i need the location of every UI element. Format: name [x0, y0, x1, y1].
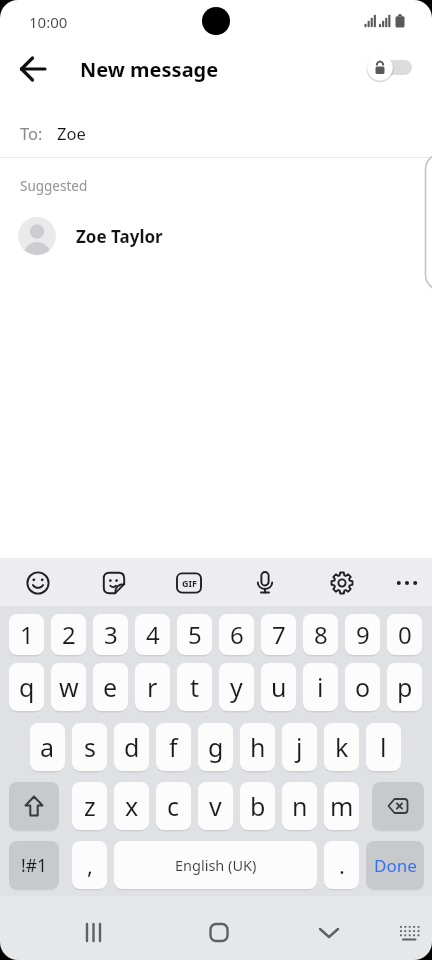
- button[interactable]: .: [324, 841, 359, 889]
- staticText: h: [250, 730, 266, 764]
- button[interactable]: [90, 558, 138, 606]
- button[interactable]: [71, 908, 119, 956]
- staticText: t: [190, 670, 200, 704]
- button[interactable]: 5: [177, 614, 212, 655]
- staticText: y: [230, 670, 243, 704]
- button[interactable]: 9: [345, 614, 380, 655]
- staticText: Zoe: [57, 122, 86, 144]
- staticText: b: [250, 789, 266, 823]
- staticText: 0: [398, 618, 412, 651]
- button[interactable]: [14, 558, 62, 606]
- button[interactable]: c: [156, 782, 191, 830]
- staticText: 8: [314, 618, 328, 651]
- button[interactable]: 1: [9, 614, 44, 655]
- button[interactable]: Zoe Taylor: [0, 210, 432, 262]
- button[interactable]: [383, 558, 431, 606]
- button[interactable]: 8: [303, 614, 338, 655]
- button[interactable]: u: [261, 663, 296, 711]
- staticText: e: [103, 670, 118, 704]
- staticText: i: [317, 670, 324, 704]
- staticText: f: [169, 730, 178, 764]
- button[interactable]: y: [219, 663, 254, 711]
- button[interactable]: 0: [387, 614, 422, 655]
- button[interactable]: k: [324, 723, 359, 771]
- button[interactable]: [195, 908, 243, 956]
- button[interactable]: [372, 782, 424, 830]
- button[interactable]: 3: [93, 614, 128, 655]
- button[interactable]: English (UK): [114, 841, 317, 889]
- button[interactable]: j: [282, 723, 317, 771]
- button[interactable]: [241, 558, 289, 606]
- button[interactable]: g: [198, 723, 233, 771]
- staticText: g: [208, 730, 224, 764]
- button[interactable]: n: [282, 782, 317, 830]
- staticText: 7: [272, 618, 286, 651]
- button[interactable]: 7: [261, 614, 296, 655]
- staticText: j: [296, 730, 303, 764]
- button[interactable]: o: [345, 663, 380, 711]
- staticText: ,: [87, 850, 93, 880]
- button[interactable]: w: [51, 663, 86, 711]
- button[interactable]: a: [30, 723, 65, 771]
- staticText: v: [209, 789, 222, 823]
- staticText: !#1: [21, 853, 48, 877]
- staticText: 9: [356, 618, 370, 651]
- button[interactable]: e: [93, 663, 128, 711]
- button[interactable]: GIF: [165, 558, 213, 606]
- staticText: 6: [230, 618, 244, 651]
- button[interactable]: !#1: [9, 841, 59, 889]
- staticText: l: [380, 730, 387, 764]
- button[interactable]: p: [387, 663, 422, 711]
- button[interactable]: t: [177, 663, 212, 711]
- button[interactable]: Done: [366, 841, 424, 889]
- button[interactable]: d: [114, 723, 149, 771]
- staticText: k: [335, 730, 349, 764]
- staticText: English (UK): [175, 855, 257, 875]
- staticText: w: [59, 670, 79, 704]
- button[interactable]: s: [72, 723, 107, 771]
- staticText: p: [397, 670, 413, 704]
- button[interactable]: [305, 908, 353, 956]
- button[interactable]: r: [135, 663, 170, 711]
- staticText: n: [292, 789, 308, 823]
- staticText: Done: [374, 854, 417, 877]
- button[interactable]: m: [324, 782, 359, 830]
- button[interactable]: [14, 50, 52, 88]
- button[interactable]: 4: [135, 614, 170, 655]
- button[interactable]: x: [114, 782, 149, 830]
- button[interactable]: q: [9, 663, 44, 711]
- staticText: o: [355, 670, 371, 704]
- button[interactable]: v: [198, 782, 233, 830]
- button[interactable]: To:: [0, 110, 432, 156]
- staticText: x: [125, 789, 139, 823]
- button[interactable]: [363, 51, 417, 85]
- staticText: z: [84, 789, 96, 823]
- staticText: a: [40, 730, 55, 764]
- staticText: 3: [104, 618, 118, 651]
- button[interactable]: [385, 908, 432, 956]
- staticText: m: [330, 789, 354, 823]
- button[interactable]: 6: [219, 614, 254, 655]
- staticText: 5: [188, 618, 202, 651]
- button[interactable]: b: [240, 782, 275, 830]
- button[interactable]: [9, 782, 59, 830]
- staticText: Zoe Taylor: [76, 225, 163, 248]
- button[interactable]: z: [72, 782, 107, 830]
- staticText: .: [339, 850, 345, 880]
- staticText: c: [167, 789, 180, 823]
- staticText: 10:00: [29, 12, 68, 32]
- button[interactable]: h: [240, 723, 275, 771]
- button[interactable]: l: [366, 723, 401, 771]
- staticText: 2: [62, 618, 76, 651]
- button[interactable]: 2: [51, 614, 86, 655]
- staticText: 4: [146, 618, 160, 651]
- button[interactable]: f: [156, 723, 191, 771]
- staticText: u: [271, 670, 287, 704]
- button[interactable]: ,: [72, 841, 107, 889]
- button[interactable]: i: [303, 663, 338, 711]
- staticText: q: [19, 670, 35, 704]
- staticText: r: [147, 670, 158, 704]
- staticText: Suggested: [20, 177, 88, 195]
- button[interactable]: [318, 558, 366, 606]
- staticText: GIF: [182, 577, 197, 589]
